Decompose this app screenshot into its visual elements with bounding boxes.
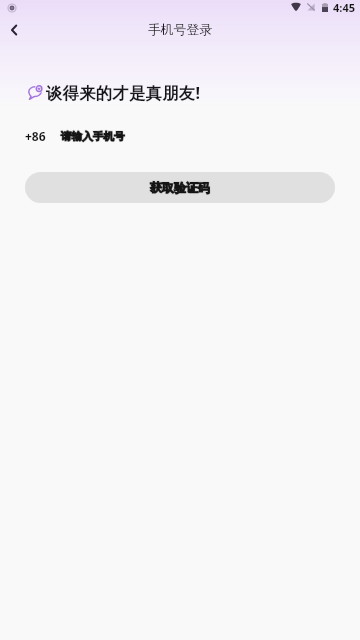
button[interactable]: +86 (25, 128, 46, 144)
staticText: 获取验证码 (150, 180, 210, 195)
staticText: +86 (25, 128, 46, 144)
staticText: 请输入手机号 (61, 130, 125, 143)
staticText: 获取验证码 (150, 180, 210, 195)
staticText: 手机号登录 (148, 22, 212, 38)
button[interactable]: 获取验证码 (25, 172, 335, 203)
staticText: 4:45 (333, 0, 355, 14)
staticText: 获取验证码 (150, 180, 210, 195)
button[interactable]: 请输入手机号 (61, 130, 335, 143)
staticText: 请输入手机号 (61, 130, 125, 143)
button[interactable]: Back (0, 18, 30, 42)
staticText: 谈得来的才是真朋友! (46, 82, 201, 104)
staticText: 请输入手机号 (61, 130, 125, 143)
